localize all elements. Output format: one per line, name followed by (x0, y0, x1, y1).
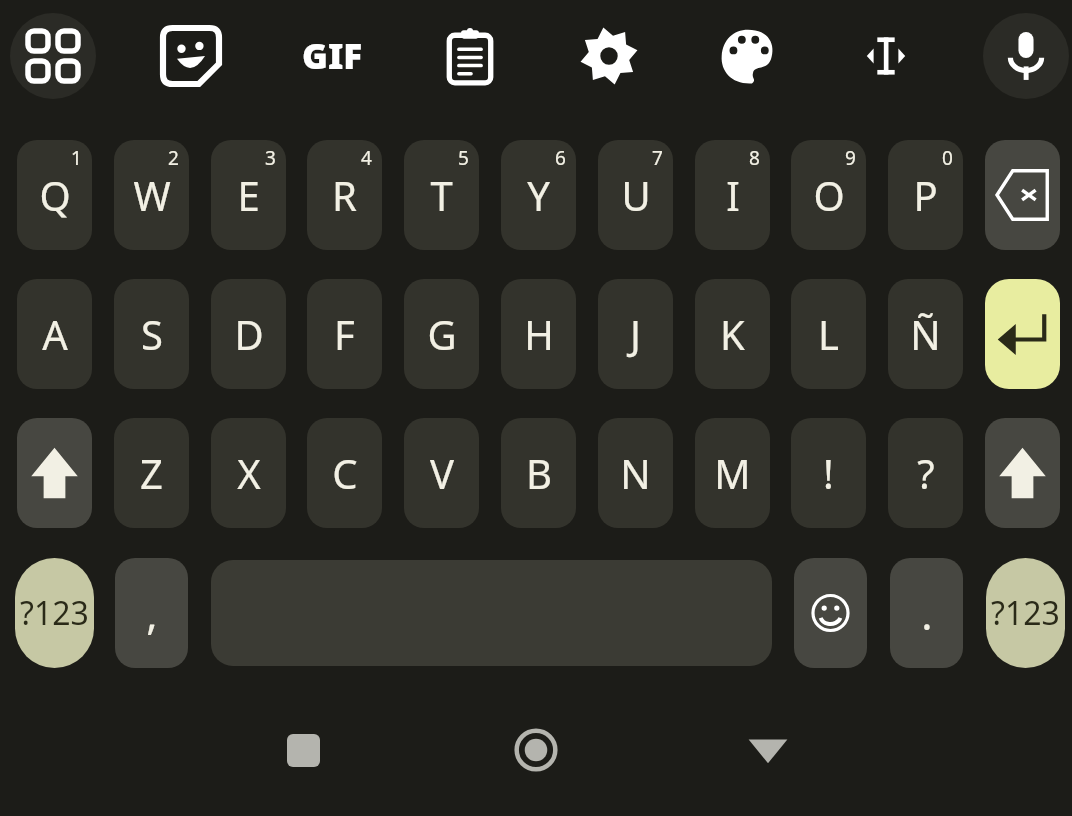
staticText: ?123 (991, 591, 1060, 635)
button[interactable]: , (115, 558, 188, 668)
button[interactable]: Ñ (888, 279, 963, 389)
staticText: O (813, 168, 845, 222)
button[interactable]: L (791, 279, 866, 389)
button[interactable]: Q (17, 140, 92, 250)
staticText: L (818, 307, 839, 361)
button[interactable]: Y (501, 140, 576, 250)
button[interactable]: ! (791, 418, 866, 528)
button[interactable]: F (307, 279, 382, 389)
button[interactable]: ? (888, 418, 963, 528)
staticText: U (621, 168, 651, 222)
staticText: S (141, 307, 163, 361)
button[interactable]: Backspace (985, 140, 1060, 250)
staticText: GIF (302, 32, 363, 80)
button[interactable]: . (890, 558, 963, 668)
button[interactable]: I (695, 140, 770, 250)
button[interactable]: N (598, 418, 673, 528)
button[interactable]: O (791, 140, 866, 250)
button[interactable]: M (695, 418, 770, 528)
staticText: N (620, 446, 651, 500)
staticText: X (237, 446, 261, 500)
staticText: K (720, 307, 745, 361)
button[interactable]: S (114, 279, 189, 389)
staticText: A (42, 307, 68, 361)
staticText: Y (527, 168, 550, 222)
button[interactable]: ?123 (15, 558, 94, 668)
button[interactable]: Text editing (846, 16, 926, 96)
button[interactable]: X (211, 418, 286, 528)
staticText: R (332, 168, 357, 222)
button[interactable]: P (888, 140, 963, 250)
staticText: M (714, 446, 751, 500)
staticText: ! (823, 446, 834, 500)
button[interactable]: R (307, 140, 382, 250)
staticText: ? (917, 446, 935, 500)
staticText: D (234, 307, 264, 361)
staticText: Z (140, 446, 163, 500)
button[interactable]: Theme (708, 16, 788, 96)
staticText: J (630, 307, 641, 361)
staticText: P (913, 168, 938, 222)
button[interactable]: Shift (985, 418, 1060, 528)
button[interactable]: Enter (985, 279, 1060, 389)
staticText: . (921, 585, 933, 642)
button[interactable]: B (501, 418, 576, 528)
button[interactable]: H (501, 279, 576, 389)
button[interactable]: Toolbar menu (10, 13, 96, 99)
staticText: H (524, 307, 554, 361)
button[interactable]: Settings (569, 16, 649, 96)
staticText: C (332, 446, 358, 500)
staticText: W (133, 168, 171, 222)
staticText: ?123 (20, 591, 89, 635)
button[interactable]: Shift (17, 418, 92, 528)
button[interactable]: GIF (292, 16, 372, 96)
button[interactable]: A (17, 279, 92, 389)
staticText: Ñ (910, 307, 941, 361)
button[interactable]: Home (496, 710, 576, 790)
button[interactable]: V (404, 418, 479, 528)
staticText: E (237, 168, 260, 222)
staticText: 3 (265, 145, 276, 171)
staticText: 1 (71, 145, 82, 171)
staticText: T (430, 168, 453, 222)
staticText: G (427, 307, 457, 361)
staticText: 4 (361, 145, 372, 171)
staticText: 5 (458, 145, 469, 171)
staticText: 6 (555, 145, 566, 171)
staticText: B (526, 446, 552, 500)
button[interactable]: D (211, 279, 286, 389)
staticText: Q (39, 168, 71, 222)
staticText: 7 (652, 145, 663, 171)
button[interactable]: ?123 (986, 558, 1065, 668)
button[interactable]: W (114, 140, 189, 250)
staticText: 9 (845, 145, 856, 171)
staticText: 0 (942, 145, 953, 171)
staticText: , (146, 585, 158, 642)
button[interactable]: G (404, 279, 479, 389)
button[interactable]: Z (114, 418, 189, 528)
button[interactable]: Voice input (983, 13, 1069, 99)
button[interactable]: U (598, 140, 673, 250)
staticText: 8 (749, 145, 760, 171)
staticText: 2 (168, 145, 179, 171)
staticText: I (726, 168, 740, 222)
staticText: F (334, 307, 355, 361)
button[interactable]: E (211, 140, 286, 250)
button[interactable]: Hide keyboard (728, 710, 808, 790)
button[interactable]: J (598, 279, 673, 389)
button[interactable]: T (404, 140, 479, 250)
button[interactable]: Recents (263, 710, 343, 790)
button[interactable]: Stickers (151, 16, 231, 96)
button[interactable]: C (307, 418, 382, 528)
button[interactable]: Emoji (794, 558, 867, 668)
button[interactable]: K (695, 279, 770, 389)
button[interactable]: Clipboard (430, 16, 510, 96)
staticText: V (430, 446, 454, 500)
